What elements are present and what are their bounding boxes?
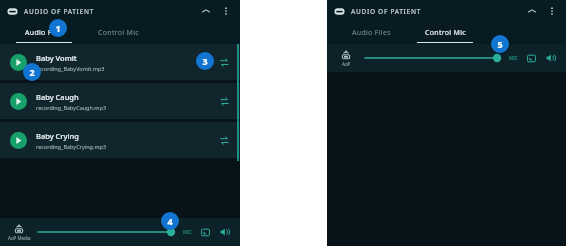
button[interactable]: Mic level bbox=[38, 224, 181, 240]
button[interactable]: Mic level bbox=[365, 50, 507, 66]
staticText: MIC bbox=[509, 55, 518, 61]
staticText: recording_BabyCaugh.mp3 bbox=[36, 104, 107, 111]
button[interactable]: Play Baby Caugh bbox=[0, 83, 240, 119]
button[interactable]: Output device bbox=[333, 50, 359, 67]
button[interactable]: Audio Files bbox=[14, 22, 74, 44]
button[interactable]: Volume bbox=[544, 51, 558, 65]
button[interactable]: Play Baby Vomit bbox=[0, 44, 240, 80]
button[interactable]: Cast bbox=[524, 51, 538, 65]
button[interactable]: Repeat bbox=[216, 93, 232, 109]
button[interactable]: Cast bbox=[198, 225, 212, 239]
staticText: Control Mic bbox=[98, 28, 139, 38]
staticText: AUDIO OF PATIENT bbox=[24, 7, 95, 16]
button[interactable]: Play Baby Caugh bbox=[10, 93, 27, 110]
staticText: AoP Media bbox=[8, 235, 31, 241]
staticText: Audio Files bbox=[352, 28, 391, 38]
staticText: recording_BabyCrying.mp3 bbox=[36, 143, 107, 150]
staticText: 1 bbox=[55, 22, 61, 34]
staticText: Baby Vomit bbox=[36, 53, 77, 63]
button[interactable]: Control Mic bbox=[415, 22, 475, 44]
staticText: MIC bbox=[183, 229, 192, 235]
staticText: Baby Crying bbox=[36, 131, 79, 141]
button[interactable]: Collapse bbox=[525, 4, 539, 18]
button[interactable]: More options bbox=[545, 4, 559, 18]
button[interactable]: Play Baby Crying bbox=[0, 122, 240, 158]
staticText: 4 bbox=[167, 215, 173, 227]
staticText: 5 bbox=[497, 38, 503, 50]
button[interactable]: Control Mic bbox=[88, 22, 148, 44]
button[interactable]: Play Baby Crying bbox=[10, 132, 27, 149]
button[interactable]: More options bbox=[219, 4, 233, 18]
button[interactable]: Audio Files bbox=[341, 22, 401, 44]
button[interactable]: Play Baby Vomit bbox=[10, 54, 27, 71]
button[interactable]: Repeat bbox=[216, 54, 232, 70]
staticText: AUDIO OF PATIENT bbox=[351, 7, 422, 16]
staticText: Audio Files bbox=[25, 28, 64, 38]
staticText: recording_BabyVomit.mp3 bbox=[36, 65, 105, 72]
button[interactable]: Volume bbox=[218, 225, 232, 239]
button[interactable]: Repeat bbox=[216, 132, 232, 148]
staticText: Baby Caugh bbox=[36, 92, 79, 102]
staticText: Control Mic bbox=[425, 28, 466, 38]
button[interactable]: Output device bbox=[6, 224, 32, 241]
staticText: AoP bbox=[342, 61, 351, 67]
staticText: 2 bbox=[29, 66, 35, 78]
button[interactable]: Collapse bbox=[199, 4, 213, 18]
staticText: 3 bbox=[202, 55, 208, 67]
